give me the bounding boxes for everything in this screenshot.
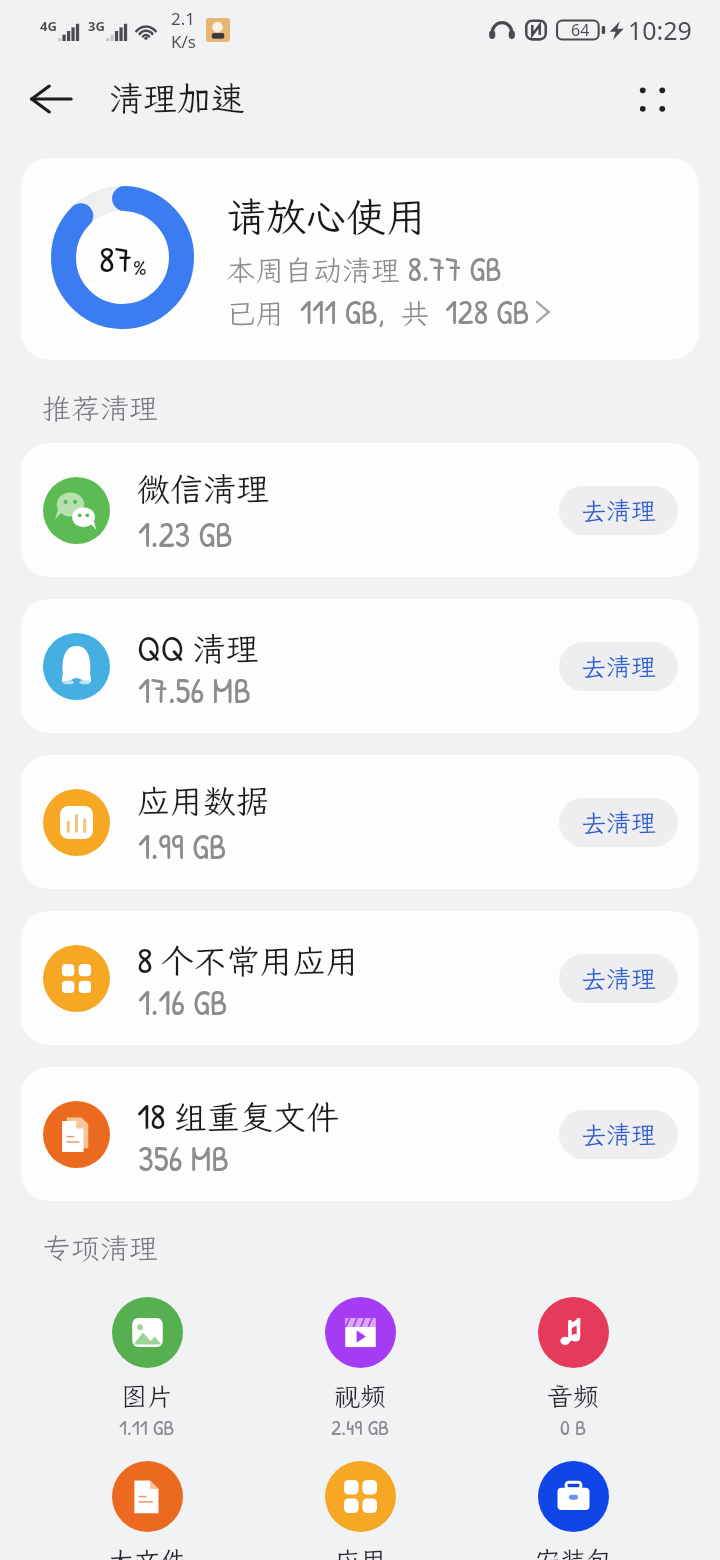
button[interactable]: 去清理 — [559, 954, 678, 1003]
button[interactable]: 应用 — [294, 1461, 426, 1560]
button[interactable]: 去清理 — [559, 798, 678, 847]
staticText: 87 — [99, 234, 133, 283]
staticText: % — [133, 253, 147, 281]
staticText: 2.1 — [171, 7, 196, 30]
button[interactable]: More options — [626, 73, 678, 125]
button[interactable]: 8 个不常用应用 — [21, 911, 699, 1045]
staticText: 356 MB — [138, 1135, 230, 1182]
staticText: 18 组重复文件 — [137, 1091, 339, 1140]
staticText: 3G — [88, 17, 105, 35]
staticText: 1.11 GB — [119, 1412, 175, 1442]
staticText: 应用数据 — [137, 779, 269, 822]
button[interactable]: Back — [20, 68, 82, 130]
button[interactable]: 去清理 — [559, 642, 678, 691]
staticText: 视频 — [334, 1379, 387, 1413]
staticText: 2.49 GB — [331, 1412, 390, 1442]
staticText: 专项清理 — [42, 1229, 159, 1267]
staticText: 去清理 — [581, 650, 657, 683]
staticText: 4G — [40, 17, 57, 35]
staticText: 清理加速 — [109, 76, 245, 121]
staticText: 去清理 — [581, 1118, 657, 1151]
button[interactable]: 安装包 — [507, 1461, 639, 1560]
button[interactable]: 87 — [21, 158, 699, 360]
staticText: 0 B — [560, 1412, 587, 1442]
staticText: 1.23 GB — [138, 511, 233, 558]
button[interactable]: 音频 — [507, 1297, 639, 1461]
button[interactable]: QQ 清理 — [21, 599, 699, 733]
staticText: 已用 111 GB, 共 128 GB — [226, 289, 530, 335]
staticText: 图片 — [121, 1379, 174, 1413]
button[interactable]: 去清理 — [559, 486, 678, 535]
staticText: K/s — [171, 30, 196, 53]
staticText: 10:29 — [628, 13, 692, 47]
button[interactable]: 图片 — [81, 1297, 213, 1461]
staticText: 64 — [571, 19, 590, 41]
staticText: 17.56 MB — [138, 667, 251, 714]
button[interactable]: 应用数据 — [21, 755, 699, 889]
staticText: 应用 — [334, 1543, 387, 1560]
staticText: 去清理 — [581, 962, 657, 995]
staticText: 去清理 — [581, 494, 657, 527]
button[interactable]: 视频 — [294, 1297, 426, 1461]
staticText: 音频 — [547, 1379, 600, 1413]
button[interactable]: 微信清理 — [21, 443, 699, 577]
staticText: 请放心使用 — [226, 190, 426, 243]
button[interactable]: 去清理 — [559, 1110, 678, 1159]
button[interactable]: 大文件 — [81, 1461, 213, 1560]
staticText: 安装包 — [534, 1543, 613, 1560]
staticText: 本周自动清理 8.77 GB — [226, 247, 502, 292]
staticText: 1.99 GB — [138, 823, 227, 870]
staticText: QQ 清理 — [137, 623, 259, 672]
staticText: 微信清理 — [137, 467, 269, 510]
staticText: 去清理 — [581, 806, 657, 839]
staticText: 1.16 GB — [138, 979, 228, 1026]
staticText: 8 个不常用应用 — [137, 935, 359, 984]
button[interactable]: 18 组重复文件 — [21, 1067, 699, 1201]
staticText: 推荐清理 — [42, 389, 159, 427]
staticText: 大文件 — [108, 1543, 187, 1560]
